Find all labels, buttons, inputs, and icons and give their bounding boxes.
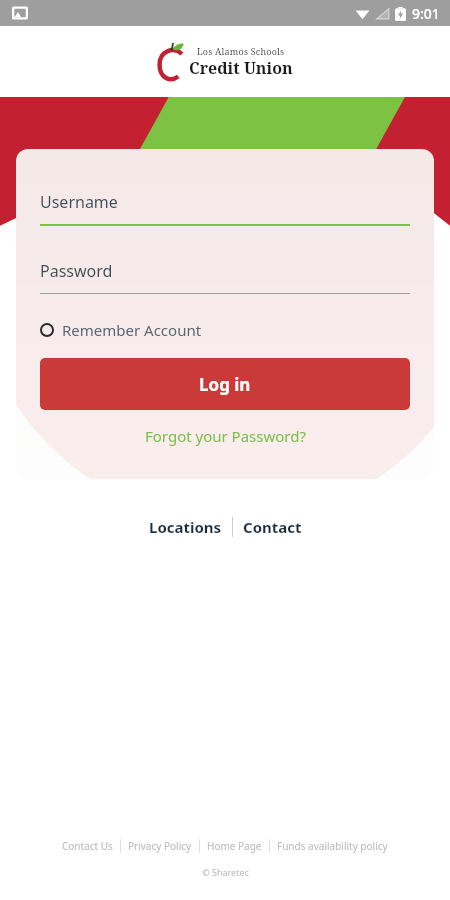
staticText: Contact Us [62,839,113,853]
staticText: Locations [149,517,222,537]
button[interactable]: Log in [40,358,410,410]
button[interactable]: Remember Account [40,316,202,344]
staticText: Credit Union [189,57,293,79]
button[interactable]: Home Page [200,836,269,856]
staticText: Remember Account [62,320,202,340]
button[interactable]: Forgot your Password? [40,426,410,446]
button[interactable]: Privacy Policy [121,836,199,856]
staticText: Username [40,191,118,213]
staticText: Funds availability policy [277,839,388,853]
staticText: Privacy Policy [128,839,192,853]
staticText: © Sharetec [202,866,249,878]
staticText: Home Page [207,839,262,853]
button[interactable]: Password [40,260,410,294]
staticText: 9:01 [412,4,440,23]
button[interactable]: Contact [233,511,312,543]
staticText: Log in [199,373,251,396]
button[interactable]: Locations [139,511,232,543]
staticText: Contact [243,517,302,537]
staticText: Forgot your Password? [145,426,306,446]
staticText: Los Alamos Schools [197,45,285,57]
staticText: Password [40,260,113,282]
button[interactable]: Username [40,191,410,226]
button[interactable]: Funds availability policy [270,836,395,856]
button[interactable]: Contact Us [55,836,120,856]
